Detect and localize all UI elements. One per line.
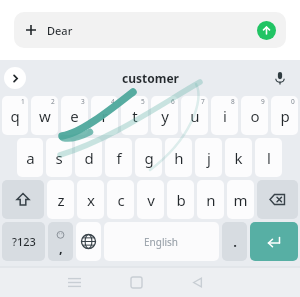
button[interactable]: h <box>165 138 192 177</box>
button[interactable]: t <box>121 96 148 135</box>
button[interactable]: . <box>222 222 247 261</box>
staticText: v <box>147 190 155 210</box>
button[interactable]: Comma and emoji <box>48 222 73 261</box>
button[interactable]: j <box>195 138 222 177</box>
button[interactable]: Back <box>180 267 214 297</box>
button[interactable]: More suggestions <box>4 67 26 89</box>
button[interactable]: n <box>197 180 224 219</box>
button[interactable]: Recent apps <box>57 267 91 297</box>
staticText: customer <box>122 70 179 86</box>
button[interactable]: Backspace <box>257 180 298 219</box>
button[interactable]: Dear <box>14 12 286 48</box>
button[interactable]: ?123 <box>2 222 45 261</box>
staticText: 5 <box>141 97 145 106</box>
staticText: n <box>206 190 216 210</box>
staticText: l <box>267 148 271 168</box>
button[interactable]: c <box>107 180 134 219</box>
staticText: g <box>144 148 154 168</box>
button[interactable]: Voice input <box>270 68 290 88</box>
button[interactable]: r <box>91 96 118 135</box>
staticText: a <box>26 148 35 168</box>
staticText: English <box>144 235 179 249</box>
staticText: 8 <box>231 97 235 106</box>
button[interactable]: s <box>46 138 72 177</box>
button[interactable]: b <box>167 180 194 219</box>
staticText: w <box>39 106 51 126</box>
staticText: 7 <box>201 97 205 106</box>
staticText: h <box>174 148 184 168</box>
staticText: , <box>59 239 63 257</box>
staticText: f <box>116 148 122 168</box>
button[interactable]: customer <box>112 66 189 90</box>
staticText: m <box>233 190 248 210</box>
button[interactable]: English <box>104 222 219 261</box>
staticText: 0 <box>291 97 295 106</box>
staticText: r <box>101 106 108 126</box>
staticText: 3 <box>81 97 85 106</box>
button[interactable]: Send <box>257 21 276 40</box>
staticText: ?123 <box>12 234 36 249</box>
staticText: 4 <box>111 97 115 106</box>
staticText: e <box>70 106 79 126</box>
staticText: p <box>280 106 290 126</box>
staticText: k <box>234 148 243 168</box>
button[interactable]: y <box>151 96 178 135</box>
button[interactable]: z <box>47 180 74 219</box>
staticText: 1 <box>21 97 25 106</box>
button[interactable]: Home <box>119 267 153 297</box>
staticText: Dear <box>47 23 73 38</box>
staticText: . <box>233 233 237 251</box>
button[interactable]: q <box>2 96 28 135</box>
button[interactable]: x <box>77 180 104 219</box>
button[interactable]: f <box>105 138 132 177</box>
staticText: y <box>161 106 169 126</box>
staticText: c <box>117 190 125 210</box>
staticText: 2 <box>51 97 55 106</box>
staticText: 6 <box>171 97 175 106</box>
button[interactable]: Change language <box>76 222 101 261</box>
button[interactable]: u <box>181 96 208 135</box>
staticText: i <box>223 106 227 126</box>
button[interactable]: i <box>211 96 238 135</box>
staticText: 9 <box>261 97 265 106</box>
button[interactable]: w <box>31 96 58 135</box>
staticText: x <box>87 190 95 210</box>
button[interactable]: e <box>61 96 88 135</box>
staticText: b <box>176 190 186 210</box>
staticText: j <box>207 148 211 168</box>
staticText: z <box>57 190 65 210</box>
button[interactable]: g <box>135 138 162 177</box>
button[interactable]: k <box>225 138 252 177</box>
staticText: t <box>132 106 138 126</box>
staticText: s <box>55 148 63 168</box>
staticText: o <box>250 106 260 126</box>
button[interactable]: Enter <box>250 222 298 261</box>
button[interactable]: v <box>137 180 164 219</box>
button[interactable]: Shift <box>2 180 44 219</box>
button[interactable]: a <box>17 138 43 177</box>
staticText: q <box>10 106 20 126</box>
button[interactable]: d <box>75 138 102 177</box>
staticText: d <box>84 148 94 168</box>
button[interactable]: p <box>271 96 298 135</box>
staticText: u <box>190 106 200 126</box>
button[interactable]: l <box>255 138 282 177</box>
button[interactable]: o <box>241 96 268 135</box>
button[interactable]: m <box>227 180 254 219</box>
